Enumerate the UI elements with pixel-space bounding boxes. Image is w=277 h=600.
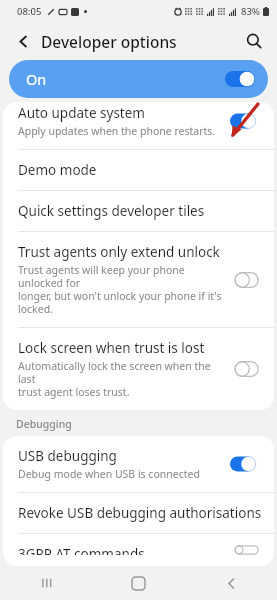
button[interactable]: Quick settings developer tiles	[3, 191, 274, 231]
staticText: Developer options	[41, 31, 177, 52]
staticText: Lock screen when trust is lost	[18, 339, 205, 357]
staticText: 3GPP AT commands	[18, 545, 145, 555]
button[interactable]: Recents	[23, 566, 69, 600]
button[interactable]: Revoke USB debugging authorisations	[3, 493, 274, 533]
staticText: Apply updates when the phone restarts.	[18, 124, 216, 138]
staticText: Revoke USB debugging authorisations	[18, 504, 262, 522]
button[interactable]: Toggle off	[230, 271, 262, 289]
staticText: Debug mode when USB is connected	[18, 467, 200, 481]
button[interactable]: Trust agents only extend unlock	[3, 232, 274, 327]
staticText: Automatically lock the screen when the l…	[18, 359, 222, 399]
button[interactable]: Toggle on	[230, 112, 262, 130]
button[interactable]: Toggle off	[230, 360, 262, 378]
staticText: Trust agents will keep your phone unlock…	[18, 263, 222, 316]
button[interactable]: Toggle off	[230, 545, 262, 555]
staticText: Trust agents only extend unlock	[18, 243, 220, 261]
staticText: Auto update system	[18, 104, 145, 122]
staticText: Quick settings developer tiles	[18, 202, 205, 220]
button[interactable]: Search	[237, 24, 271, 58]
staticText: USB debugging	[18, 447, 117, 465]
staticText: Debugging	[16, 417, 72, 431]
button[interactable]: On	[9, 60, 268, 98]
button[interactable]: Back	[6, 24, 40, 58]
button[interactable]: Lock screen when trust is lost	[3, 328, 274, 410]
staticText: 83%	[241, 5, 260, 18]
button[interactable]: Auto update system	[3, 102, 274, 149]
button[interactable]: USB debugging	[3, 436, 274, 492]
staticText: 08:05	[17, 5, 42, 18]
staticText: On	[26, 69, 47, 89]
button[interactable]: Toggle on	[230, 455, 262, 473]
staticText: Demo mode	[18, 161, 97, 179]
button[interactable]: 3GPP AT commands	[3, 534, 274, 566]
button[interactable]: Home	[115, 566, 161, 600]
button[interactable]: Back	[208, 566, 254, 600]
button[interactable]: Demo mode	[3, 150, 274, 190]
